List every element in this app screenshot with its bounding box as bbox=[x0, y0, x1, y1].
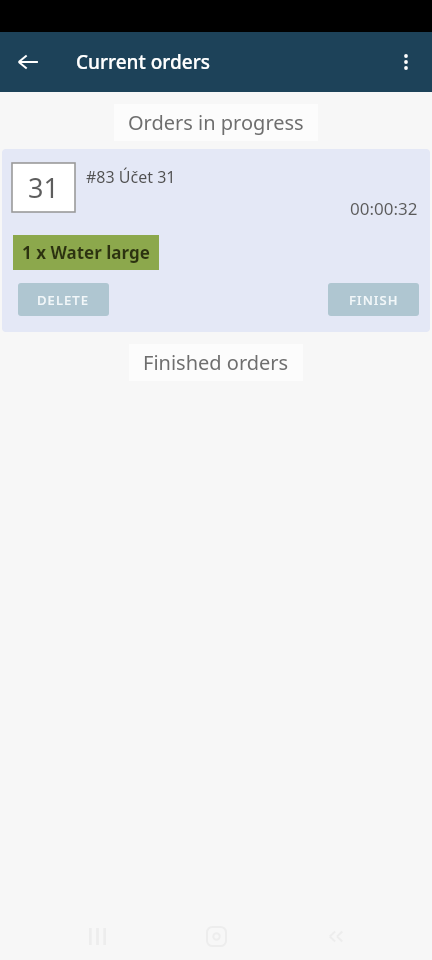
staticText: FINISH bbox=[349, 291, 399, 309]
button[interactable]: FINISH bbox=[328, 283, 419, 316]
button[interactable]: 31 bbox=[2, 149, 430, 332]
button[interactable]: More options bbox=[384, 40, 428, 84]
button[interactable]: Back bbox=[6, 40, 50, 84]
staticText: 31 bbox=[28, 169, 59, 206]
staticText: Finished orders bbox=[143, 349, 289, 376]
staticText: 1 x Water large bbox=[22, 241, 150, 264]
button[interactable]: DELETE bbox=[18, 283, 109, 316]
staticText: #83 Účet 31 bbox=[86, 166, 176, 188]
staticText: Current orders bbox=[76, 49, 210, 75]
staticText: 00:00:32 bbox=[350, 197, 418, 220]
staticText: Orders in progress bbox=[128, 109, 304, 136]
staticText: DELETE bbox=[37, 291, 90, 309]
